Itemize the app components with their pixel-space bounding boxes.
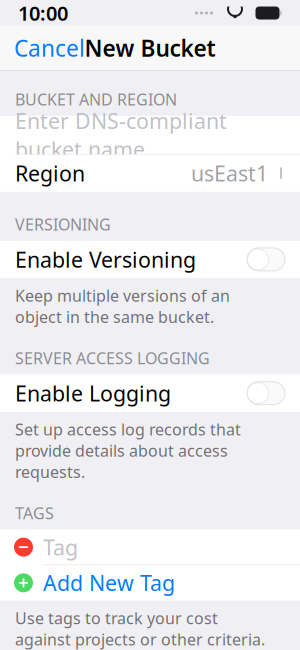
staticText: VERSIONING bbox=[15, 214, 111, 235]
button[interactable]: Enable Logging bbox=[0, 375, 300, 412]
staticText: Set up access log records that provide d… bbox=[15, 419, 241, 482]
button[interactable]: Add New Tag bbox=[0, 565, 300, 600]
button[interactable]: Region bbox=[0, 155, 300, 192]
staticText: Keep multiple versions of an object in t… bbox=[15, 285, 230, 327]
staticText: Use tags to track your cost against proj… bbox=[15, 607, 265, 650]
staticText: BUCKET AND REGION bbox=[15, 89, 177, 110]
staticText: Tag bbox=[43, 533, 78, 561]
staticText: Enable Logging bbox=[15, 379, 171, 407]
staticText: Region bbox=[15, 159, 85, 187]
staticText: 10:00 bbox=[18, 0, 68, 26]
staticText: New Bucket bbox=[84, 33, 215, 63]
staticText: Enter DNS-compliant bucket name bbox=[15, 107, 227, 163]
button[interactable]: Tag bbox=[0, 530, 300, 565]
staticText: Add New Tag bbox=[43, 569, 175, 597]
staticText: TAGS bbox=[15, 502, 54, 524]
staticText: Enable Versioning bbox=[15, 245, 196, 273]
staticText: Cancel bbox=[14, 33, 85, 63]
button[interactable]: Enable Versioning bbox=[0, 241, 300, 278]
button[interactable]: Enter DNS-compliant bucket name bbox=[0, 116, 300, 154]
staticText: usEast1 bbox=[191, 159, 268, 187]
button[interactable]: Cancel bbox=[0, 26, 99, 70]
staticText: SERVER ACCESS LOGGING bbox=[15, 347, 210, 369]
